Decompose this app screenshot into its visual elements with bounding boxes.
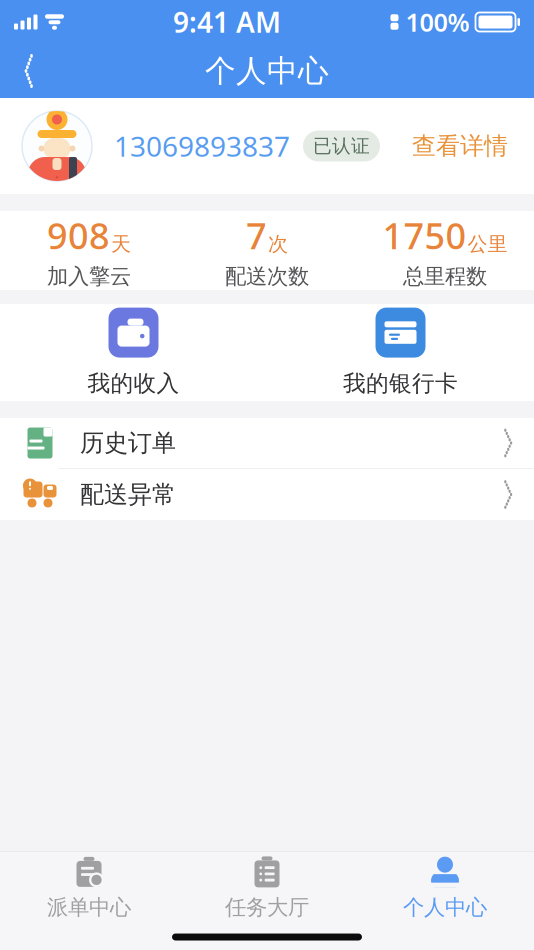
staticText: 天 [111,232,131,256]
button[interactable]: 个人中心 [356,849,534,927]
staticText: 个人中心 [205,52,329,90]
staticText: 7 [246,211,267,259]
staticText: 100% [405,5,469,39]
staticText: 1750 [382,211,466,259]
staticText: 13069893837 [114,127,290,165]
button[interactable]: 配送异常 [0,469,534,520]
button[interactable]: 任务大厅 [178,849,356,927]
staticText: 我的银行卡 [343,370,458,397]
staticText: 历史订单 [80,428,176,458]
staticText: 任务大厅 [225,894,309,921]
button[interactable]: 我的收入 [0,296,267,409]
button[interactable]: 我的银行卡 [267,296,534,409]
button[interactable]: 派单中心 [0,849,178,927]
staticText: 加入擎云 [47,263,131,289]
staticText: 908 [47,211,110,259]
staticText: 总里程数 [403,263,487,289]
staticText: 已认证 [313,134,370,157]
button[interactable]: 历史订单 [0,418,534,469]
button[interactable]: 查看详情 [408,121,512,171]
staticText: 公里 [467,232,507,256]
staticText: 配送次数 [225,263,309,289]
staticText: 我的收入 [87,370,179,397]
staticText: 配送异常 [80,480,176,509]
staticText: 个人中心 [403,894,487,921]
staticText: 派单中心 [47,894,131,921]
staticText: 9:41 AM [173,3,281,41]
staticText: 次 [268,232,288,256]
staticText: 查看详情 [412,131,508,161]
button[interactable]: Back [0,47,52,95]
